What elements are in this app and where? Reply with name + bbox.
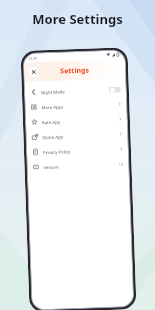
button[interactable]: Close: [28, 66, 39, 78]
button[interactable]: Version: [27, 156, 129, 175]
staticText: Version: [43, 164, 60, 170]
staticText: Settings: [60, 66, 89, 77]
staticText: Share App: [42, 133, 64, 140]
staticText: More Settings: [32, 10, 123, 28]
staticText: Rate App: [42, 119, 61, 125]
button[interactable]: Night Mode: [25, 81, 126, 100]
button[interactable]: Toggle night mode: [109, 86, 121, 93]
button[interactable]: Share App: [26, 126, 128, 145]
button[interactable]: More Apps: [25, 96, 127, 115]
staticText: More Apps: [41, 103, 63, 110]
staticText: 1.0: [118, 161, 124, 167]
staticText: 12:30: [29, 56, 38, 61]
staticText: Privacy Policy: [43, 148, 71, 155]
button[interactable]: Privacy Policy: [27, 141, 128, 160]
staticText: Night Mode: [41, 88, 65, 95]
button[interactable]: Rate App: [26, 111, 127, 130]
